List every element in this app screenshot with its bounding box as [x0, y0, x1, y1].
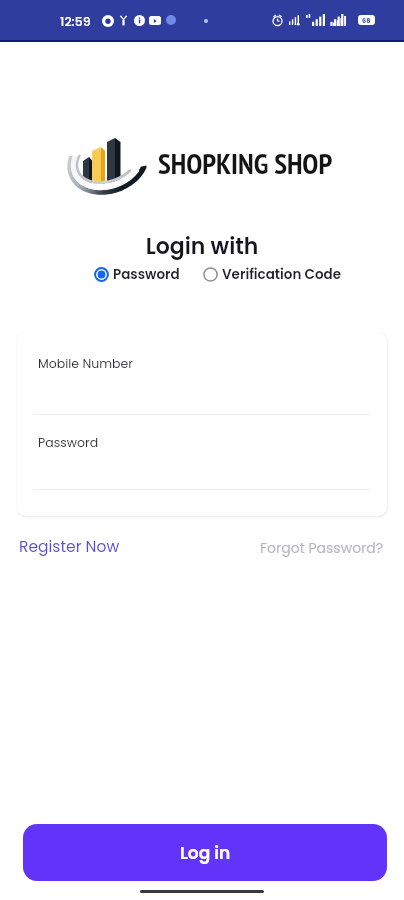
staticText: Register Now — [19, 536, 120, 558]
button[interactable]: Log in — [23, 824, 387, 881]
staticText: 12:59 — [60, 13, 91, 30]
button[interactable]: Forgot Password? — [253, 534, 391, 562]
button[interactable]: Password — [17, 420, 387, 490]
staticText: 68 — [362, 16, 371, 25]
staticText: Mobile Number — [38, 355, 133, 372]
staticText: Log in — [180, 841, 231, 865]
staticText: Password — [38, 434, 99, 451]
button[interactable]: Verification Code — [201, 262, 344, 287]
staticText: Forgot Password? — [260, 538, 384, 558]
staticText: Password — [113, 265, 180, 284]
staticText: SHOPKING SHOP — [158, 144, 333, 182]
button[interactable]: Mobile Number — [17, 340, 387, 414]
button[interactable]: Register Now — [12, 532, 127, 562]
staticText: Login with — [0, 231, 404, 262]
staticText: Verification Code — [222, 265, 342, 284]
button[interactable]: Password — [92, 262, 182, 287]
